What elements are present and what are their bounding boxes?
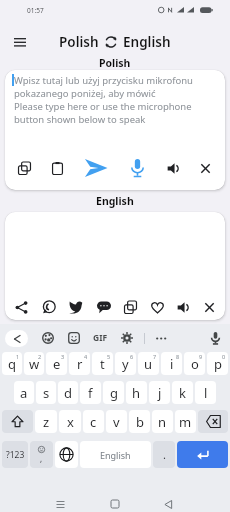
button[interactable] <box>209 332 222 345</box>
button[interactable] <box>105 36 117 48</box>
button[interactable]: t <box>92 352 113 375</box>
button[interactable] <box>167 162 180 175</box>
staticText: o <box>191 355 199 373</box>
button[interactable]: GIF <box>93 332 108 344</box>
staticText: , <box>40 453 43 464</box>
button[interactable] <box>196 448 210 462</box>
button[interactable] <box>51 162 64 175</box>
staticText: c <box>90 413 97 431</box>
button[interactable] <box>97 300 111 314</box>
button[interactable] <box>69 300 83 314</box>
button[interactable] <box>11 33 29 51</box>
button[interactable] <box>121 332 133 344</box>
button[interactable] <box>18 162 31 175</box>
button[interactable] <box>164 500 173 509</box>
staticText: d <box>64 384 72 402</box>
button[interactable]: e <box>46 352 67 375</box>
staticText: s <box>43 384 50 402</box>
button[interactable]: j <box>149 381 170 404</box>
button[interactable]: k <box>172 381 193 404</box>
button[interactable]: u <box>138 352 159 375</box>
button[interactable]: d <box>58 381 78 404</box>
button[interactable]: b <box>129 410 150 433</box>
staticText: 1 <box>16 353 20 360</box>
staticText: z <box>43 413 50 431</box>
button[interactable] <box>42 300 56 314</box>
staticText: 6 <box>130 353 134 360</box>
staticText: n <box>158 413 167 431</box>
staticText: x <box>67 413 74 431</box>
button[interactable]: Polish <box>59 33 99 51</box>
button[interactable]: h <box>126 381 147 404</box>
staticText: i <box>170 355 174 373</box>
button[interactable] <box>84 156 108 180</box>
button[interactable]: English <box>80 441 151 468</box>
button[interactable]: English <box>123 33 171 51</box>
button[interactable]: m <box>175 410 196 433</box>
button[interactable]: i <box>161 352 182 375</box>
button[interactable]: q <box>2 352 22 375</box>
button[interactable]: Wpisz tutaj lub użyj przycisku mikrofonu… <box>5 70 225 190</box>
button[interactable] <box>151 301 164 314</box>
button[interactable] <box>56 500 65 509</box>
button[interactable] <box>124 301 137 314</box>
staticText: v <box>113 413 120 431</box>
staticText: j <box>158 384 162 402</box>
staticText: k <box>179 384 186 402</box>
staticText: r <box>77 355 83 373</box>
button[interactable] <box>204 302 215 313</box>
button[interactable] <box>198 410 228 433</box>
button[interactable] <box>177 441 228 468</box>
button[interactable]: y <box>115 352 136 375</box>
staticText: g <box>110 384 118 402</box>
button[interactable]: z <box>35 410 57 433</box>
staticText: Wpisz tutaj lub użyj przycisku mikrofonu… <box>14 74 193 126</box>
staticText: f <box>88 384 93 402</box>
button[interactable]: r <box>69 352 90 375</box>
button[interactable]: p <box>207 352 228 375</box>
button[interactable]: x <box>59 410 81 433</box>
button[interactable] <box>206 414 221 429</box>
button[interactable] <box>155 332 168 345</box>
staticText: 8 <box>176 353 180 360</box>
button[interactable] <box>128 159 147 178</box>
button[interactable] <box>55 441 78 468</box>
button[interactable]: ?123 <box>2 441 28 468</box>
staticText: t <box>100 355 105 373</box>
button[interactable]: f <box>80 381 101 404</box>
staticText: . <box>163 447 166 462</box>
button[interactable] <box>15 301 28 314</box>
staticText: w <box>29 355 40 373</box>
staticText: 7 <box>153 353 157 360</box>
staticText: 3 <box>61 353 65 360</box>
button[interactable]: l <box>195 381 216 404</box>
button[interactable] <box>59 447 74 462</box>
button[interactable]: n <box>152 410 173 433</box>
staticText: b <box>136 413 144 431</box>
button[interactable] <box>200 163 211 174</box>
button[interactable]: g <box>103 381 124 404</box>
button[interactable] <box>177 301 190 314</box>
button[interactable] <box>5 212 225 320</box>
staticText: English <box>96 194 134 208</box>
button[interactable] <box>68 332 80 344</box>
button[interactable] <box>5 330 28 347</box>
button[interactable] <box>11 415 24 428</box>
staticText: ?123 <box>6 449 25 461</box>
button[interactable]: c <box>83 410 104 433</box>
button[interactable] <box>2 410 33 433</box>
staticText: Polish <box>99 56 131 70</box>
button[interactable] <box>111 500 119 508</box>
button[interactable]: o <box>184 352 205 375</box>
button[interactable]: . <box>153 441 175 468</box>
button[interactable]: w <box>24 352 44 375</box>
staticText: h <box>132 384 141 402</box>
button[interactable]: s <box>36 381 56 404</box>
staticText: q <box>8 355 16 373</box>
button[interactable]: v <box>106 410 127 433</box>
button[interactable] <box>42 332 54 344</box>
staticText: a <box>20 384 28 402</box>
button[interactable]: a <box>14 381 34 404</box>
staticText: u <box>144 355 153 373</box>
button[interactable]: , <box>30 441 53 468</box>
